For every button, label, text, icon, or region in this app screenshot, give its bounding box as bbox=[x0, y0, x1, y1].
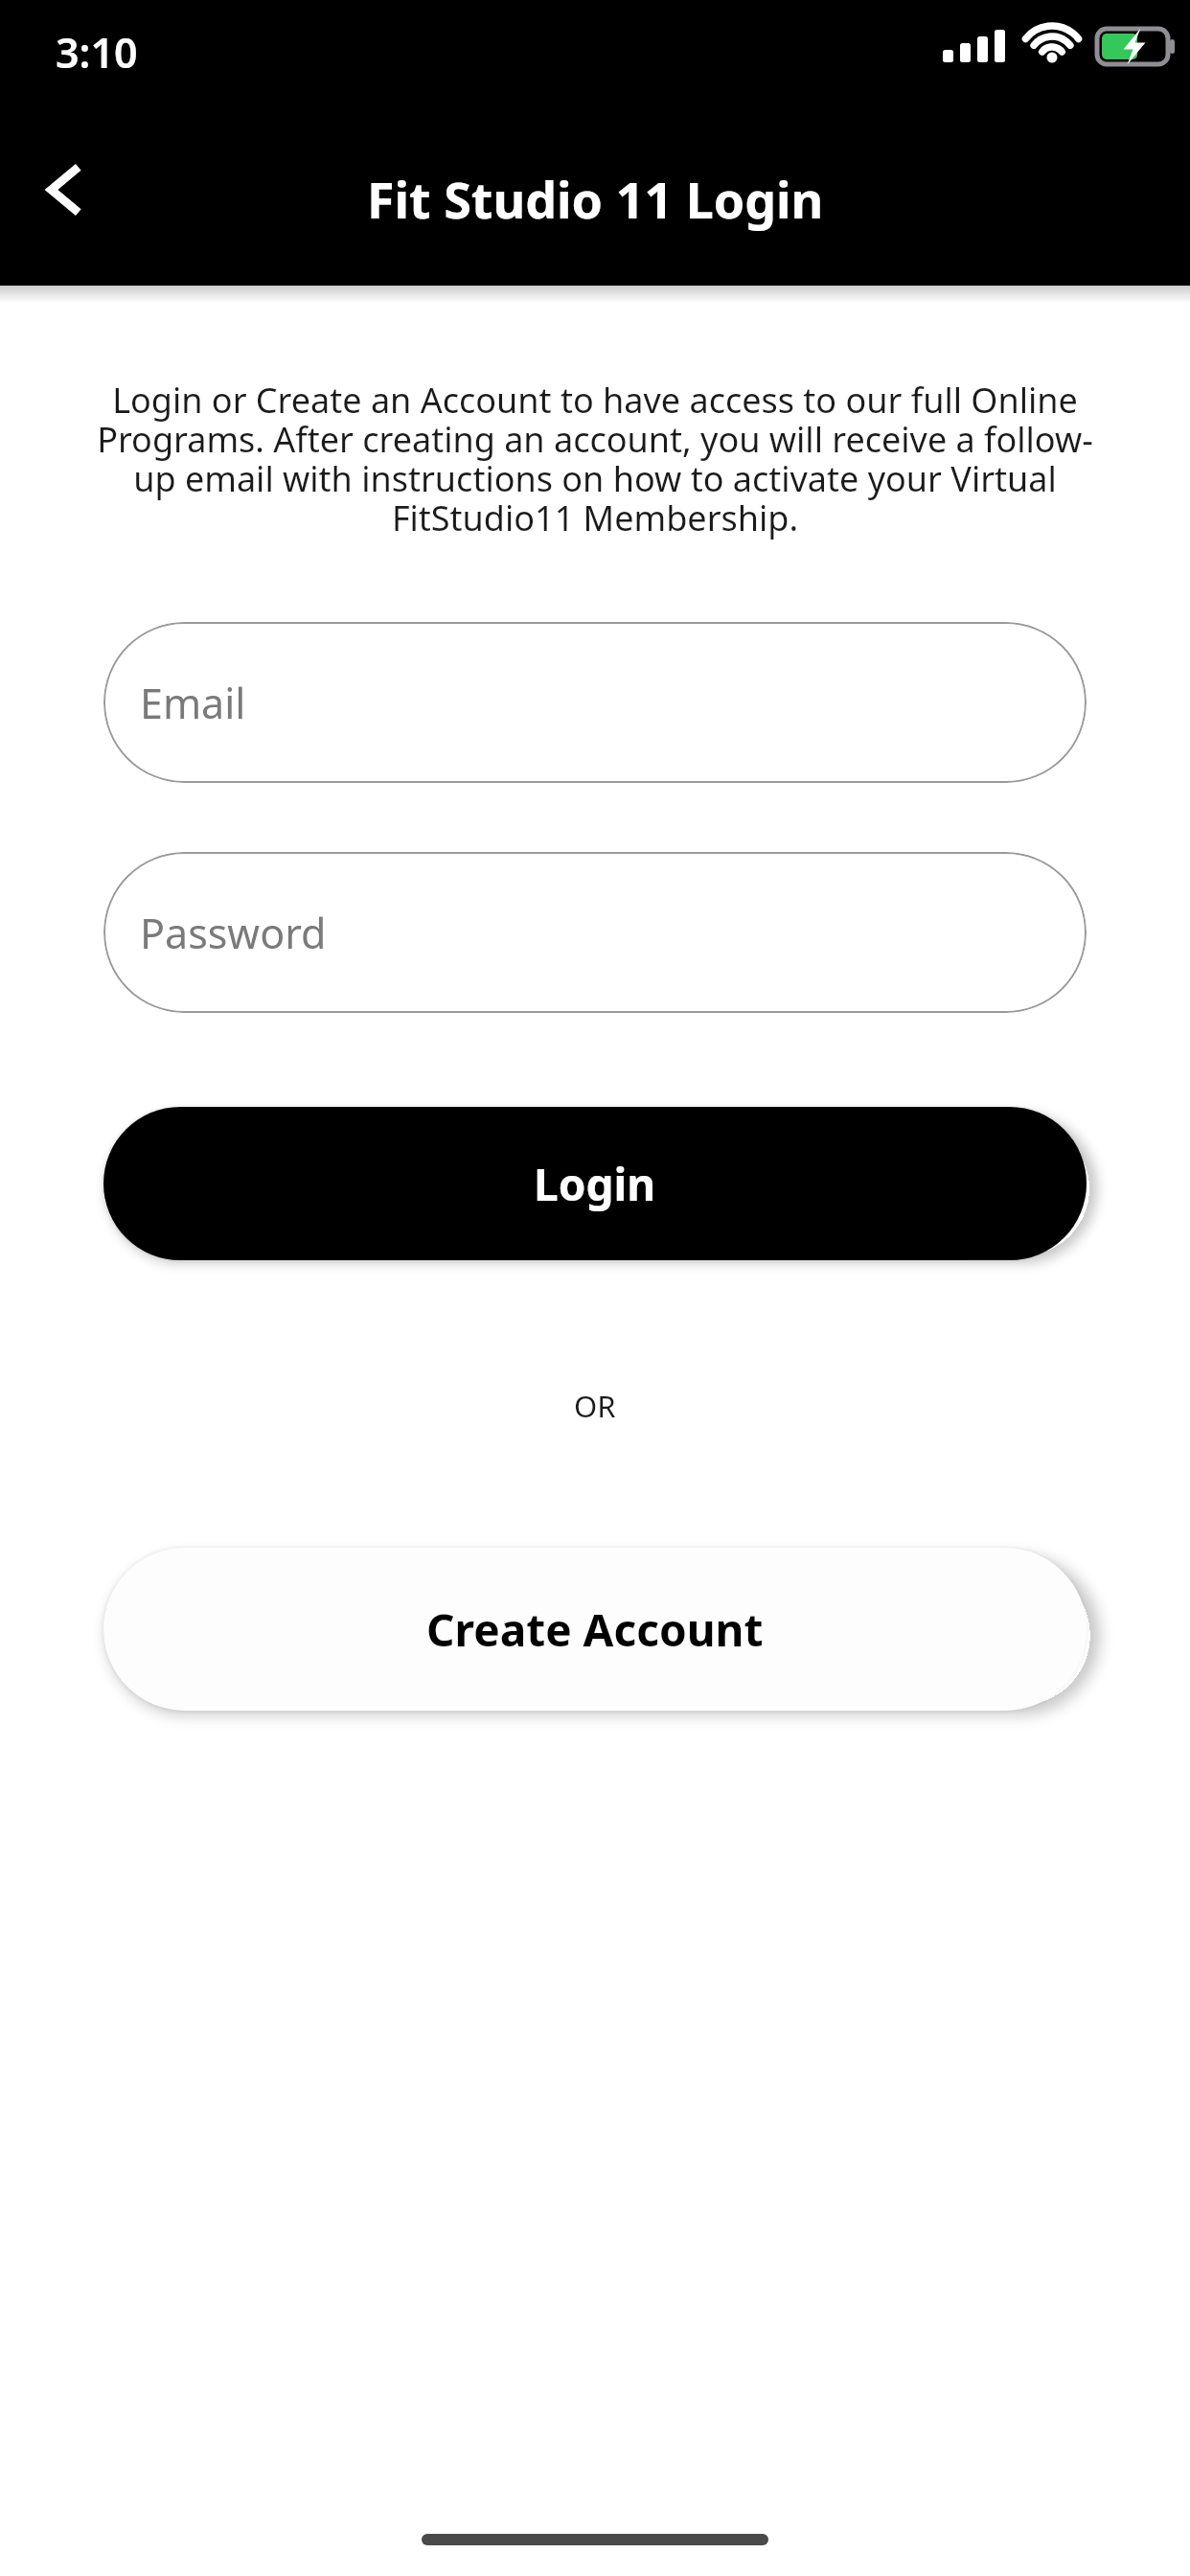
staticText: OR bbox=[574, 1386, 616, 1426]
staticText: Fit Studio 11 Login bbox=[367, 165, 824, 233]
staticText: Password bbox=[140, 905, 327, 961]
button[interactable]: Email bbox=[103, 622, 1087, 783]
button[interactable]: Back bbox=[17, 142, 113, 238]
staticText: Login bbox=[534, 1154, 656, 1214]
staticText: Login or Create an Account to have acces… bbox=[96, 377, 1094, 541]
staticText: Email bbox=[140, 675, 246, 731]
button[interactable]: Login bbox=[103, 1107, 1087, 1260]
staticText: 3:10 bbox=[56, 24, 138, 80]
staticText: Create Account bbox=[426, 1599, 764, 1660]
button[interactable]: Create Account bbox=[103, 1548, 1087, 1711]
button[interactable]: Password bbox=[103, 852, 1087, 1013]
